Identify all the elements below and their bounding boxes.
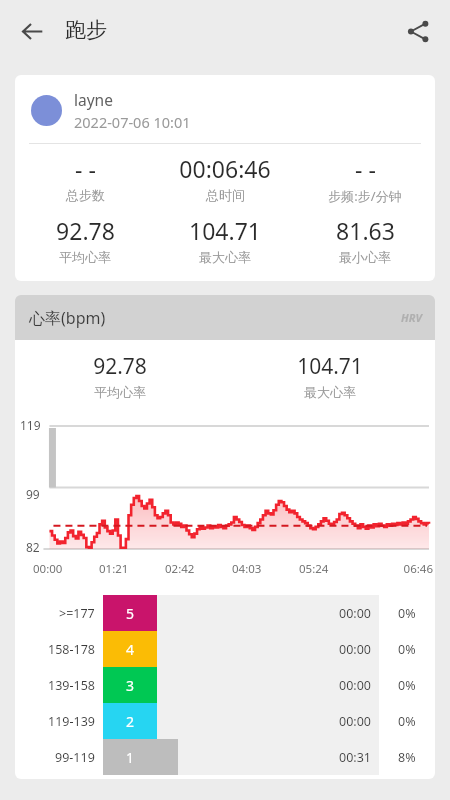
staticText: - - [355, 153, 376, 184]
staticText: 119-139 [48, 713, 95, 730]
staticText: 04:03 [232, 561, 299, 577]
staticText: 02:42 [165, 561, 232, 577]
staticText: 最大心率 [199, 249, 251, 265]
staticText: 00:00 [339, 713, 371, 730]
staticText: 92.78 [56, 215, 115, 246]
staticText: 平均心率 [94, 384, 146, 400]
button[interactable]: 158-178 [15, 631, 435, 667]
button[interactable]: HRV [401, 310, 423, 325]
staticText: - - [75, 153, 96, 184]
staticText: 104.71 [297, 352, 363, 381]
staticText: 0% [398, 605, 416, 622]
staticText: 0% [398, 677, 416, 694]
staticText: 139-158 [48, 677, 95, 694]
staticText: 1 [126, 748, 135, 767]
button[interactable]: Share [396, 9, 440, 53]
button[interactable]: >=177 [15, 595, 435, 631]
staticText: 06:46 [366, 561, 433, 577]
staticText: 0% [398, 713, 416, 730]
staticText: 92.78 [93, 352, 147, 381]
staticText: 最小心率 [339, 249, 391, 265]
staticText: 104.71 [189, 215, 261, 246]
staticText: 05:24 [299, 561, 366, 577]
staticText: 00:00 [339, 641, 371, 658]
staticText: 00:31 [339, 749, 371, 766]
staticText: 最大心率 [304, 384, 356, 400]
staticText: 99 [26, 486, 40, 502]
staticText: 81.63 [336, 215, 395, 246]
staticText: 00:00 [339, 677, 371, 694]
button[interactable]: 119-139 [15, 703, 435, 739]
staticText: 4 [126, 640, 135, 659]
staticText: 01:21 [99, 561, 165, 577]
staticText: 2 [126, 712, 135, 731]
button[interactable]: 99-119 [15, 739, 435, 775]
staticText: 总步数 [66, 187, 105, 203]
button[interactable]: Back [10, 9, 54, 53]
staticText: layne [74, 89, 113, 110]
staticText: 平均心率 [59, 249, 111, 265]
staticText: HRV [401, 310, 423, 325]
button[interactable]: 139-158 [15, 667, 435, 703]
staticText: 2022-07-06 10:01 [74, 112, 191, 132]
staticText: 跑步 [65, 17, 107, 43]
staticText: 00:06:46 [179, 153, 271, 184]
staticText: 3 [126, 676, 135, 695]
staticText: 119 [20, 417, 41, 433]
staticText: 00:00 [33, 561, 99, 577]
staticText: 步频:步/分钟 [328, 187, 402, 205]
staticText: 总时间 [206, 187, 245, 203]
staticText: 00:00 [339, 605, 371, 622]
staticText: 99-119 [55, 749, 95, 766]
staticText: 0% [398, 641, 416, 658]
staticText: 8% [398, 749, 416, 766]
staticText: >=177 [59, 605, 95, 622]
staticText: 5 [126, 604, 135, 623]
staticText: 心率(bpm) [29, 307, 106, 329]
staticText: 82 [26, 539, 40, 555]
staticText: 158-178 [48, 641, 95, 658]
